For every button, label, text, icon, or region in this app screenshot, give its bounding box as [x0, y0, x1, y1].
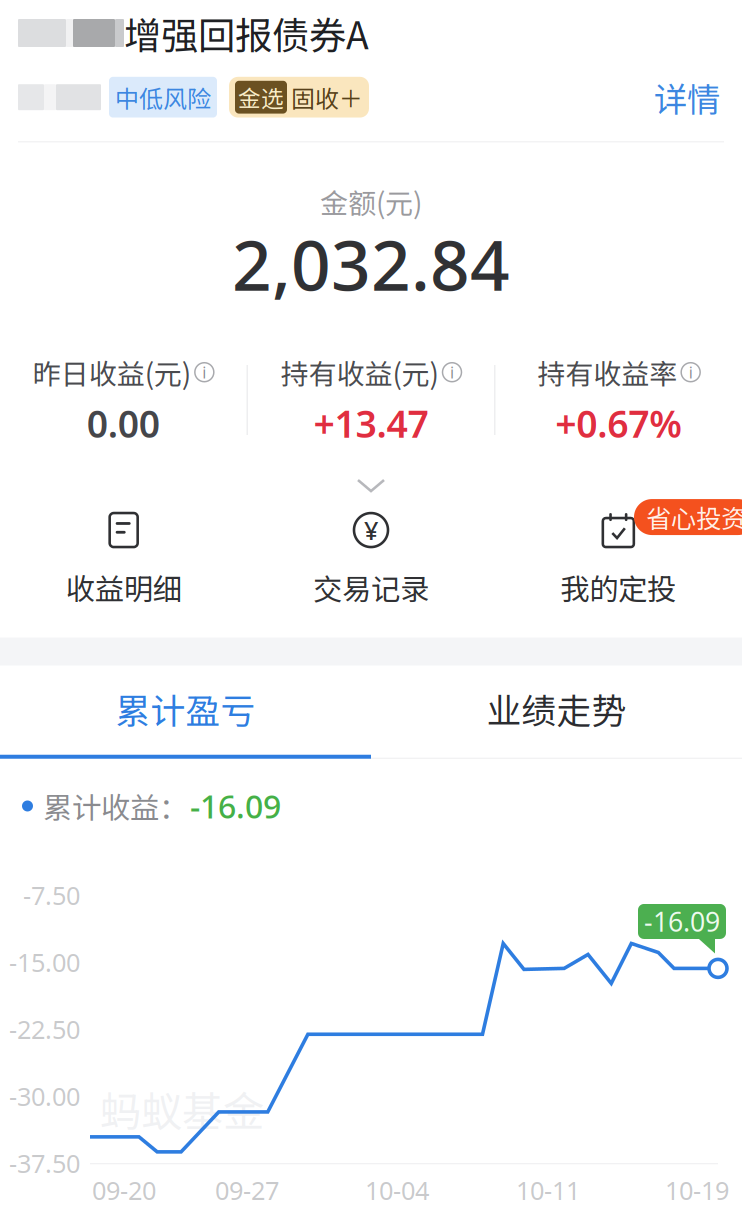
staticText: i: [202, 362, 206, 383]
staticText: 09-20: [92, 1173, 156, 1207]
staticText: i: [450, 362, 454, 383]
staticText: 累计收益：: [43, 785, 188, 827]
staticText: -30.00: [9, 1079, 80, 1113]
staticText: 详情: [654, 73, 720, 121]
staticText: 金额(元): [320, 181, 422, 222]
staticText: 昨日收益(元): [33, 352, 191, 392]
button[interactable]: 我的定投: [495, 506, 742, 615]
button[interactable]: 累计盈亏: [0, 665, 371, 755]
staticText: -37.50: [9, 1146, 80, 1180]
staticText: 持有收益率: [537, 352, 677, 392]
staticText: 10-11: [516, 1173, 580, 1207]
staticText: 增强回报债券A: [124, 6, 369, 60]
staticText: 省心投资: [646, 499, 742, 535]
staticText: 10-19: [665, 1173, 729, 1207]
staticText: +13.47: [313, 398, 428, 448]
staticText: -15.00: [9, 945, 80, 979]
staticText: -7.50: [23, 878, 80, 912]
staticText: 持有收益(元): [280, 352, 438, 392]
staticText: 交易记录: [313, 566, 429, 609]
staticText: 中低风险: [115, 80, 211, 115]
staticText: -22.50: [9, 1012, 80, 1046]
staticText: 2,032.84: [232, 218, 510, 310]
button[interactable]: 业绩走势: [371, 665, 742, 755]
staticText: 我的定投: [560, 566, 676, 609]
button[interactable]: 详情: [632, 63, 742, 131]
button[interactable]: 收益明细: [0, 506, 247, 615]
staticText: i: [689, 362, 693, 383]
staticText: 固收＋: [291, 80, 363, 115]
staticText: 累计盈亏: [115, 683, 255, 734]
staticText: -16.09: [190, 785, 281, 827]
staticText: 业绩走势: [486, 683, 626, 734]
staticText: 0.00: [87, 398, 160, 448]
staticText: ¥: [364, 513, 378, 547]
staticText: +0.67%: [555, 398, 682, 448]
staticText: 蚂蚁基金: [100, 1079, 264, 1139]
staticText: 10-04: [365, 1173, 429, 1207]
button[interactable]: Expand: [318, 448, 424, 506]
staticText: 收益明细: [66, 566, 182, 609]
staticText: -16.09: [644, 904, 720, 939]
staticText: 09-27: [215, 1173, 279, 1207]
button[interactable]: ¥: [247, 506, 495, 615]
staticText: 金选: [238, 81, 284, 114]
